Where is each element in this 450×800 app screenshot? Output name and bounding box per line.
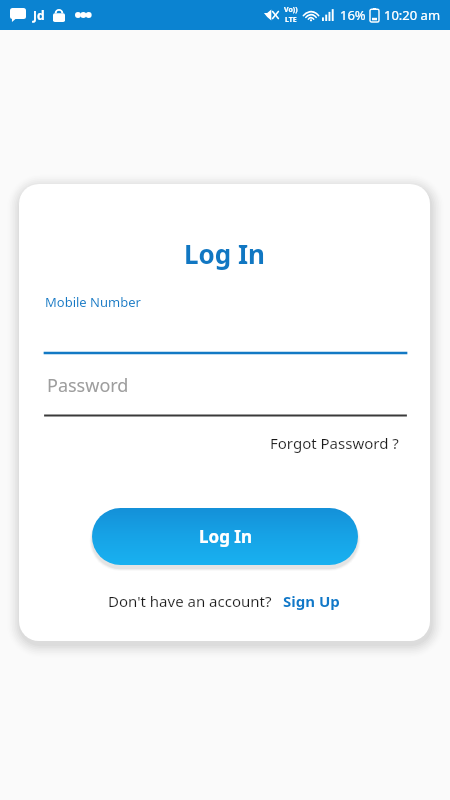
button[interactable]: Password bbox=[45, 364, 406, 417]
staticText: 16% bbox=[340, 6, 366, 24]
button[interactable]: Forgot Password ? bbox=[267, 428, 402, 458]
staticText: Jd bbox=[33, 7, 45, 23]
staticText: Don't have an account? bbox=[108, 591, 272, 611]
staticText: LTE bbox=[285, 15, 297, 25]
button[interactable]: Mobile Number input field bbox=[45, 311, 406, 355]
staticText: Mobile Number bbox=[45, 293, 141, 311]
button[interactable]: Sign Up bbox=[281, 588, 342, 614]
staticText: Password bbox=[47, 373, 129, 398]
button[interactable]: Log In bbox=[92, 508, 358, 565]
staticText: Log In bbox=[184, 236, 265, 271]
staticText: Vo)) bbox=[284, 5, 298, 15]
staticText: Forgot Password ? bbox=[270, 433, 399, 453]
staticText: 10:20 am bbox=[384, 6, 441, 24]
staticText: Sign Up bbox=[283, 591, 340, 611]
staticText: Log In bbox=[199, 525, 252, 548]
